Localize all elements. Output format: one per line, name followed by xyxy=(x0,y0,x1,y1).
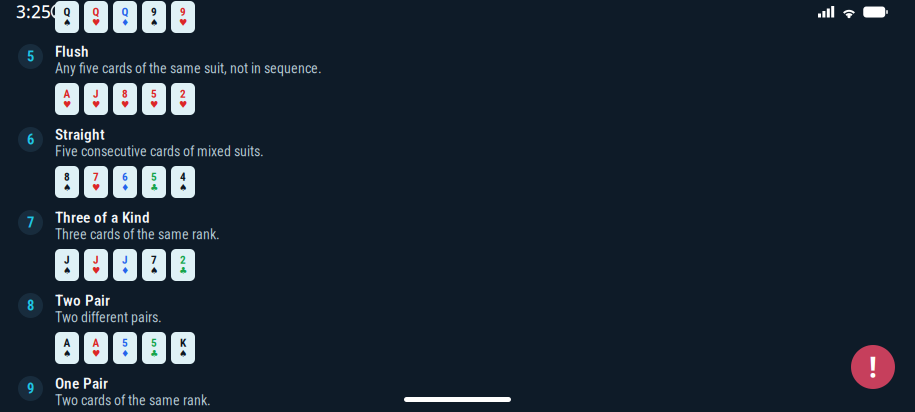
staticText: Q xyxy=(121,5,128,19)
staticText: ♣ xyxy=(150,348,158,359)
staticText: Flush xyxy=(55,42,89,60)
staticText: ♥ xyxy=(121,99,129,110)
staticText: 6 xyxy=(27,131,34,148)
staticText: ♠ xyxy=(63,182,71,193)
staticText: ♥ xyxy=(92,265,100,276)
staticText: ♥ xyxy=(92,348,100,359)
staticText: ♦ xyxy=(121,182,129,193)
staticText: 7 xyxy=(27,214,34,231)
staticText: ♠ xyxy=(150,17,158,28)
staticText: ♥ xyxy=(92,17,100,28)
button[interactable]: 9 xyxy=(0,365,915,412)
button[interactable]: 8 xyxy=(0,282,915,365)
staticText: J xyxy=(93,87,99,101)
staticText: ♥ xyxy=(179,17,187,28)
staticText: ♠ xyxy=(150,265,158,276)
staticText: Q xyxy=(63,5,70,19)
staticText: One Pair xyxy=(55,374,108,392)
button[interactable]: Warning xyxy=(851,345,895,389)
staticText: 2 xyxy=(180,87,186,101)
staticText: ♥ xyxy=(92,182,100,193)
staticText: 9 xyxy=(180,5,186,19)
staticText: ♦ xyxy=(121,17,129,28)
staticText: ♥ xyxy=(92,99,100,110)
staticText: ♠ xyxy=(179,182,187,193)
staticText: ♦ xyxy=(121,265,129,276)
button[interactable]: 6 xyxy=(0,116,915,199)
staticText: Three cards of the same rank. xyxy=(55,226,220,243)
staticText: 5 xyxy=(151,87,157,101)
button[interactable]: 5 xyxy=(0,33,915,116)
staticText: 2 xyxy=(180,253,186,267)
button[interactable]: 7 xyxy=(0,199,915,282)
staticText: ♣ xyxy=(150,182,158,193)
staticText: Two different pairs. xyxy=(55,309,162,326)
staticText: 6 xyxy=(122,170,128,184)
staticText: Five consecutive cards of mixed suits. xyxy=(55,143,264,160)
staticText: ♠ xyxy=(179,348,187,359)
staticText: ♠ xyxy=(63,265,71,276)
staticText: ♠ xyxy=(63,17,71,28)
staticText: J xyxy=(64,253,70,267)
staticText: Two cards of the same rank. xyxy=(55,392,211,409)
staticText: A xyxy=(63,87,70,101)
staticText: ♣ xyxy=(179,265,187,276)
staticText: A xyxy=(92,336,99,350)
staticText: 5 xyxy=(27,48,34,65)
staticText: 5 xyxy=(151,170,157,184)
staticText: A xyxy=(63,336,70,350)
staticText: ♥ xyxy=(63,99,71,110)
staticText: 9 xyxy=(151,5,157,19)
staticText: ! xyxy=(869,348,877,386)
staticText: J xyxy=(93,253,99,267)
staticText: 7 xyxy=(93,170,99,184)
staticText: 9 xyxy=(27,380,34,397)
staticText: 7 xyxy=(151,253,157,267)
staticText: ♠ xyxy=(63,348,71,359)
staticText: ♥ xyxy=(150,99,158,110)
staticText: Q xyxy=(92,5,99,19)
staticText: 5 xyxy=(151,336,157,350)
staticText: 5 xyxy=(122,336,128,350)
staticText: 8 xyxy=(122,87,128,101)
staticText: Three of a Kind xyxy=(55,208,150,226)
staticText: J xyxy=(122,253,128,267)
staticText: 4 xyxy=(180,170,186,184)
staticText: Two Pair xyxy=(55,291,110,309)
staticText: K xyxy=(180,336,186,350)
staticText: ♦ xyxy=(121,348,129,359)
staticText: Any five cards of the same suit, not in … xyxy=(55,60,322,77)
staticText: ♥ xyxy=(179,99,187,110)
staticText: Straight xyxy=(55,125,105,143)
staticText: 3:25 xyxy=(16,0,51,23)
staticText: 8 xyxy=(27,297,34,314)
staticText: 8 xyxy=(64,170,70,184)
